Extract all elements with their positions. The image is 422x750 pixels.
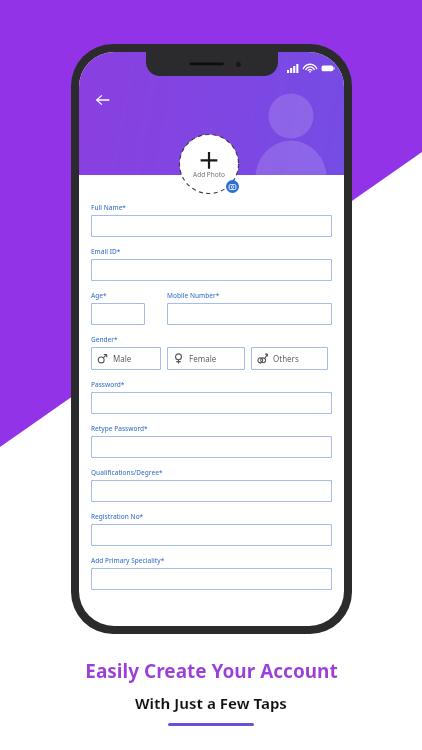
staticText: With Just a Few Taps (135, 693, 287, 713)
button[interactable]: Back (92, 89, 114, 111)
staticText: Registration No* (91, 512, 144, 521)
button[interactable] (91, 480, 332, 502)
button[interactable] (91, 436, 332, 458)
button[interactable]: Female (167, 347, 245, 370)
button[interactable]: Add Photo (178, 133, 240, 195)
staticText: Email ID* (91, 247, 121, 256)
button[interactable] (91, 215, 332, 237)
staticText: Full Name* (91, 203, 126, 212)
staticText: Mobile Number* (167, 291, 220, 300)
button[interactable] (91, 392, 332, 414)
staticText: Gender* (91, 335, 118, 344)
button[interactable]: Others (251, 347, 328, 370)
button[interactable] (91, 524, 332, 546)
staticText: Age* (91, 291, 107, 300)
button[interactable] (91, 303, 145, 325)
button[interactable] (167, 303, 332, 325)
staticText: Others (273, 353, 299, 364)
staticText: Male (113, 353, 132, 364)
staticText: Retype Password* (91, 424, 148, 433)
staticText: Qualifications/Degree* (91, 468, 163, 477)
button[interactable] (91, 259, 332, 281)
staticText: Password* (91, 380, 125, 389)
button[interactable] (91, 568, 332, 590)
staticText: Add Photo (193, 170, 225, 179)
button[interactable]: Male (91, 347, 161, 370)
staticText: Add Primary Speciality* (91, 556, 165, 565)
staticText: Female (189, 353, 217, 364)
staticText: Easily Create Your Account (85, 658, 338, 684)
